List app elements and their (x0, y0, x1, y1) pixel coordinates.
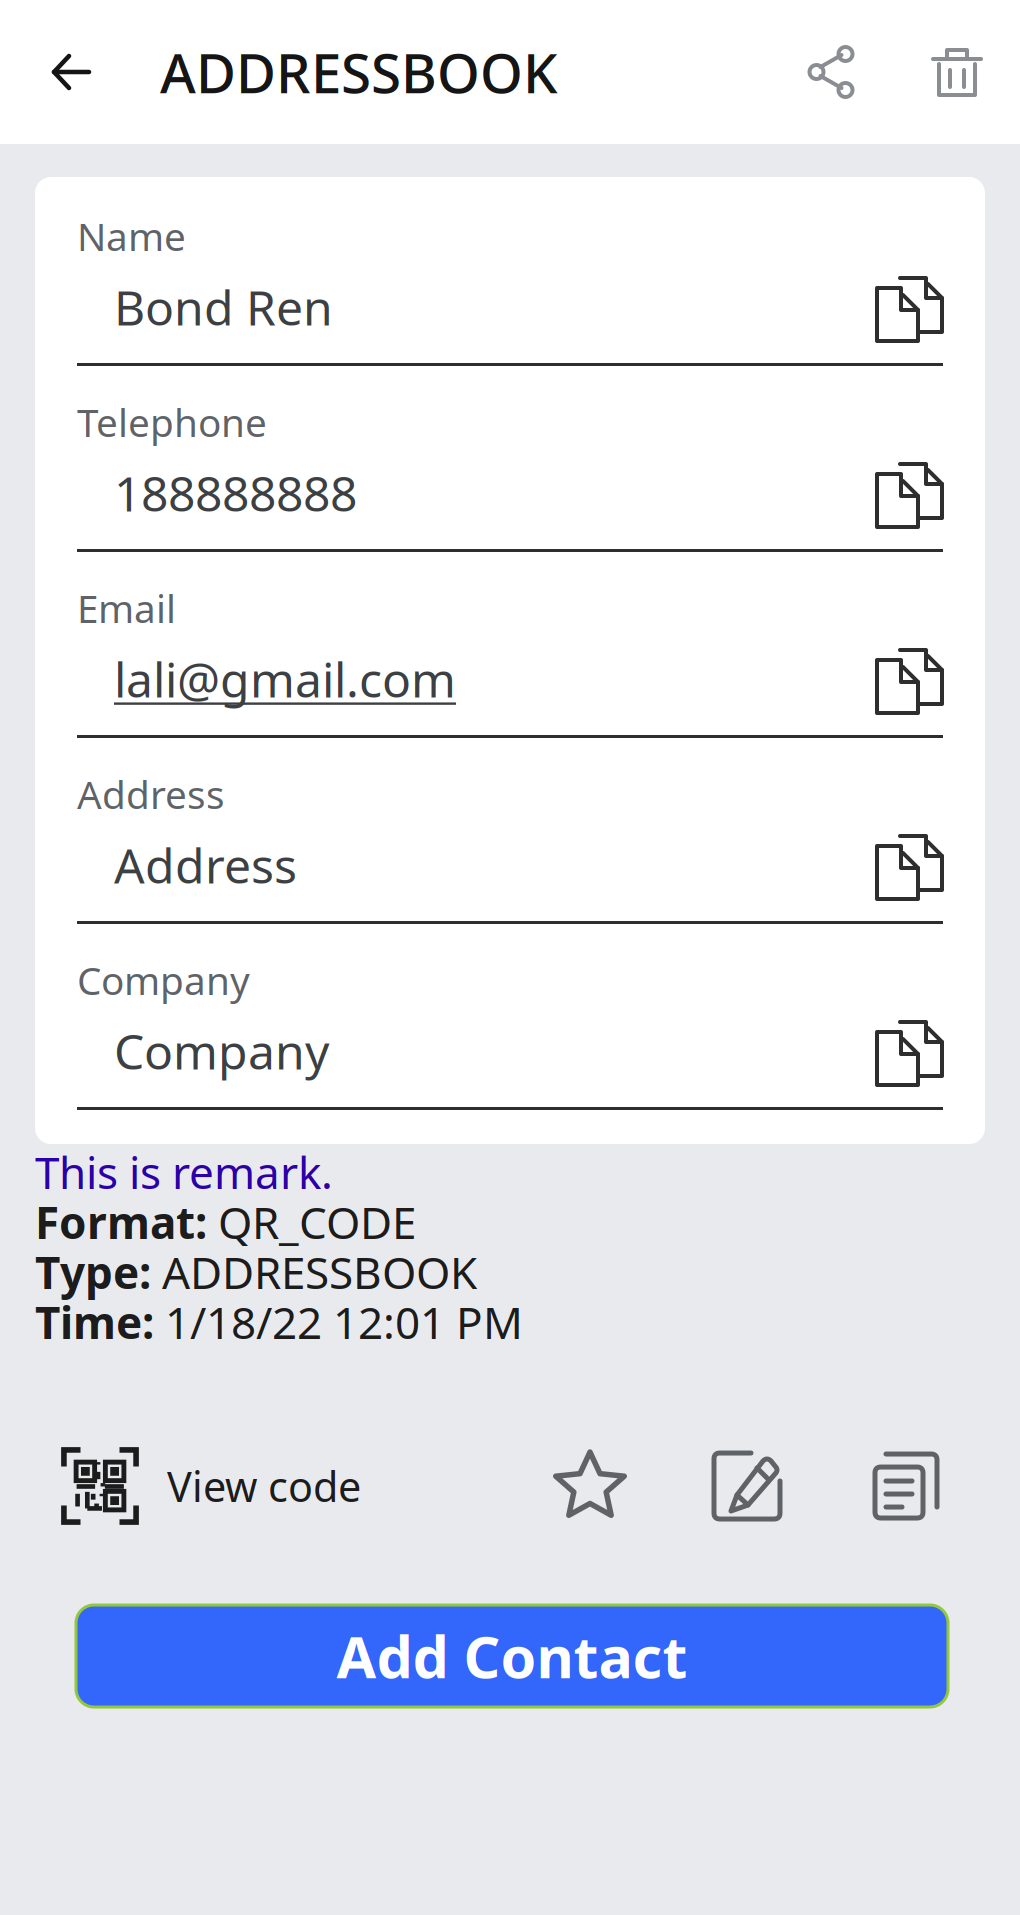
button[interactable]: Favourite (553, 1447, 627, 1525)
staticText: Type: ADDRESSBOOK (35, 1243, 477, 1301)
staticText: Format: QR_CODE (35, 1193, 416, 1251)
staticText: Address (114, 833, 297, 897)
button[interactable]: Share (768, 0, 894, 144)
staticText: This is remark. (35, 1143, 333, 1201)
staticText: Company (77, 954, 250, 1006)
button[interactable]: Copy Address (875, 828, 943, 902)
staticText: 188888888 (114, 461, 357, 525)
staticText: Bond Ren (114, 275, 333, 339)
button[interactable]: Edit (711, 1450, 783, 1522)
staticText: Time: 1/18/22 12:01 PM (35, 1293, 523, 1351)
button[interactable]: Back (0, 0, 143, 144)
staticText: Name (77, 210, 186, 262)
button[interactable]: View code (61, 1447, 361, 1525)
staticText: Address (77, 768, 225, 820)
button[interactable]: Add Contact (76, 1605, 948, 1707)
button[interactable]: Copy Telephone (875, 456, 943, 530)
staticText: View code (167, 1459, 361, 1513)
staticText: Email (77, 582, 176, 634)
staticText: Telephone (77, 396, 267, 448)
staticText: ADDRESSBOOK (160, 36, 558, 108)
button[interactable]: Copy Email (875, 642, 943, 716)
button[interactable]: Copy Company (875, 1014, 943, 1088)
button[interactable]: Copy all (871, 1450, 941, 1522)
staticText: lali@gmail.com (114, 647, 456, 711)
button[interactable]: Copy Name (875, 270, 943, 344)
staticText: Company (114, 1019, 329, 1083)
staticText: Add Contact (336, 1618, 687, 1694)
button[interactable]: Delete (894, 0, 1020, 144)
